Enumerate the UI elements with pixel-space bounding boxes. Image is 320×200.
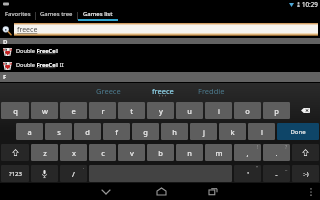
button[interactable]: n	[176, 144, 203, 161]
button[interactable]: ,	[234, 144, 261, 161]
button[interactable]: .	[263, 144, 290, 161]
button[interactable]: s	[45, 123, 72, 140]
other: Search	[0, 24, 12, 36]
button[interactable]: p	[263, 102, 290, 119]
button[interactable]: Done	[277, 123, 319, 140]
button[interactable]: Recent apps	[204, 183, 222, 200]
staticText: y	[159, 106, 163, 116]
other: Shift	[12, 149, 19, 156]
staticText: r	[101, 106, 105, 116]
staticText: Favorites	[5, 10, 31, 18]
staticText: Games tree	[40, 10, 73, 18]
button[interactable]: v	[118, 144, 145, 161]
button[interactable]: t	[118, 102, 145, 119]
staticText: F	[3, 73, 7, 81]
staticText: i	[218, 106, 220, 116]
staticText: e	[71, 106, 76, 116]
button[interactable]: b	[147, 144, 174, 161]
staticText: v	[130, 148, 134, 158]
other: Shift	[302, 149, 309, 156]
button[interactable]: Games list	[78, 8, 118, 23]
button[interactable]: More options	[302, 183, 320, 200]
staticText: p	[274, 106, 279, 116]
staticText: /	[72, 169, 75, 179]
button[interactable]: x	[60, 144, 87, 161]
button[interactable]: freece	[14, 23, 318, 36]
staticText: o	[245, 106, 250, 116]
button[interactable]: g	[132, 123, 159, 140]
button[interactable]: Home	[152, 183, 170, 200]
staticText: ?123	[9, 170, 22, 178]
button[interactable]: m	[205, 144, 232, 161]
button[interactable]: u	[176, 102, 203, 119]
staticText: a	[27, 127, 32, 137]
button[interactable]: Double FreeCell II	[0, 58, 320, 72]
button[interactable]: ?123	[1, 165, 29, 182]
button[interactable]: Favorites	[0, 8, 35, 23]
staticText: "	[256, 165, 259, 172]
button[interactable]: '	[234, 165, 261, 182]
button[interactable]: k	[219, 123, 246, 140]
other: Voice input	[42, 170, 47, 178]
staticText: g	[143, 127, 148, 137]
staticText: .	[275, 148, 278, 158]
button[interactable]: a	[16, 123, 43, 140]
staticText: D	[3, 38, 8, 44]
button[interactable]: z	[31, 144, 58, 161]
button[interactable]: :-)	[292, 165, 319, 182]
button[interactable]: -	[263, 165, 290, 182]
staticText: q	[13, 106, 18, 116]
button[interactable]: r	[89, 102, 116, 119]
button[interactable]: Backspace	[292, 102, 319, 119]
staticText: Freddie	[198, 86, 225, 96]
staticText: m	[215, 148, 223, 158]
staticText: b	[158, 148, 163, 158]
staticText: h	[172, 127, 177, 137]
staticText: ·	[83, 165, 85, 172]
button[interactable]: freece	[140, 83, 185, 100]
staticText: :-)	[303, 170, 309, 178]
staticText: 10:29	[302, 0, 318, 8]
staticText: Greece	[96, 86, 121, 96]
button[interactable]: w	[31, 102, 58, 119]
staticText: d	[85, 127, 90, 137]
button[interactable]: Freddie	[186, 83, 236, 100]
staticText: l	[261, 127, 263, 137]
staticText: Done	[290, 128, 306, 136]
button[interactable]: i	[205, 102, 232, 119]
staticText: Games list	[83, 10, 113, 18]
button[interactable]: e	[60, 102, 87, 119]
staticText: k	[230, 127, 235, 137]
staticText: freece	[152, 86, 174, 96]
button[interactable]: /	[60, 165, 87, 182]
button[interactable]: f	[103, 123, 130, 140]
staticText: w	[42, 106, 48, 116]
button[interactable]: Double FreeCell	[0, 44, 320, 58]
other: Backspace	[301, 108, 310, 113]
button[interactable]: Hide keyboard	[97, 183, 115, 200]
button[interactable]: h	[161, 123, 188, 140]
button[interactable]: d	[74, 123, 101, 140]
button[interactable]: Greece	[84, 83, 132, 100]
button[interactable]: o	[234, 102, 261, 119]
staticText: Double FreeCell	[16, 47, 59, 55]
staticText: s	[57, 127, 61, 137]
button[interactable]: Shift	[1, 144, 29, 161]
button[interactable]: y	[147, 102, 174, 119]
button[interactable]: l	[248, 123, 275, 140]
button[interactable]: j	[190, 123, 217, 140]
staticText: j	[203, 127, 205, 137]
button[interactable]: Shift	[292, 144, 319, 161]
button[interactable]: Games tree	[36, 8, 77, 23]
button[interactable]: q	[1, 102, 29, 119]
staticText: t	[130, 106, 133, 116]
staticText: '	[247, 169, 249, 179]
staticText: _	[285, 165, 288, 172]
button[interactable]: c	[89, 144, 116, 161]
staticText: x	[72, 148, 76, 158]
staticText: ?	[285, 144, 288, 151]
staticText: u	[187, 106, 192, 116]
staticText: f	[115, 127, 118, 137]
button[interactable]: Voice input	[31, 165, 58, 182]
